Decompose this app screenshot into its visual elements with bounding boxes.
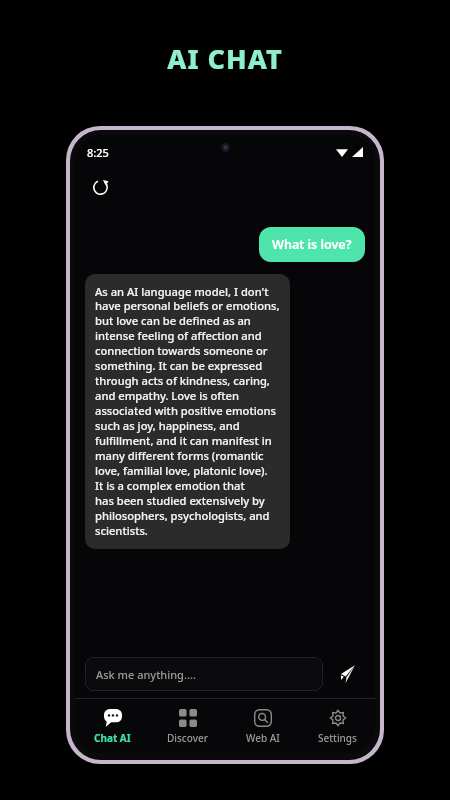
staticText: Chat AI	[94, 731, 131, 745]
button[interactable]: Settings	[300, 703, 375, 750]
button[interactable]: Discover	[150, 703, 225, 750]
button[interactable]: Ask me anything....	[85, 657, 323, 691]
staticText: What is love?	[272, 236, 352, 253]
button[interactable]: Web AI	[225, 703, 300, 750]
button[interactable]: As an AI language model, I don't have pe…	[85, 274, 290, 549]
staticText: Discover	[167, 731, 208, 745]
button[interactable]: Send	[323, 652, 367, 696]
staticText: Ask me anything....	[96, 667, 196, 682]
button[interactable]: What is love?	[259, 227, 365, 262]
button[interactable]: Chat AI	[75, 703, 150, 750]
button[interactable]: Refresh	[85, 172, 115, 202]
staticText: As an AI language model, I don't have pe…	[95, 284, 280, 539]
staticText: 8:25	[87, 145, 109, 160]
staticText: AI CHAT	[167, 40, 283, 77]
staticText: Settings	[318, 731, 357, 745]
staticText: Web AI	[246, 731, 280, 745]
